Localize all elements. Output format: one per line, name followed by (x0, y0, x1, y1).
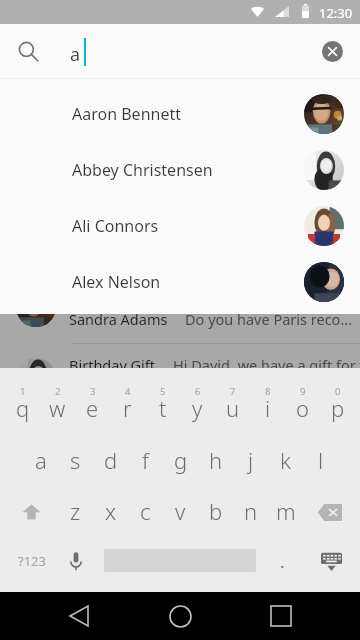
button[interactable]: 5 (145, 369, 180, 413)
staticText: Birthday Gift (69, 355, 156, 375)
button[interactable]: 4 (110, 369, 145, 413)
staticText: 8 (265, 385, 271, 398)
staticText: ?123 (18, 552, 46, 570)
button[interactable]: r (110, 382, 145, 434)
button[interactable]: h (198, 434, 233, 486)
staticText: Hi David, we have a gift for you... (173, 355, 360, 375)
button[interactable]: Abbey Christensen (0, 142, 360, 198)
staticText: e (86, 393, 99, 423)
staticText: 6 (195, 385, 201, 398)
staticText: h (209, 445, 223, 475)
button[interactable]: 8 (250, 369, 285, 413)
button[interactable]: z (58, 485, 93, 537)
button[interactable]: Alex Nelson (0, 254, 360, 310)
staticText: 0 (335, 385, 341, 398)
staticText: y (192, 393, 203, 423)
staticText: x (105, 496, 117, 526)
button[interactable]: Aaron Bennett (0, 86, 360, 142)
button[interactable]: 0 (320, 369, 355, 413)
button[interactable]: g (163, 434, 198, 486)
button[interactable]: e (75, 382, 110, 434)
staticText: q (16, 393, 30, 423)
staticText: Sandra Adams (69, 309, 168, 329)
button[interactable]: o (285, 382, 320, 434)
staticText: 4 (125, 385, 131, 398)
staticText: c (140, 496, 151, 526)
staticText: g (174, 445, 188, 475)
staticText: l (318, 445, 324, 475)
button[interactable]: t (145, 382, 180, 434)
button[interactable]: 9 (285, 369, 320, 413)
button[interactable]: a (23, 434, 58, 486)
staticText: a (70, 42, 81, 67)
button[interactable]: Clear search (310, 24, 354, 79)
button[interactable]: 6 (180, 369, 215, 413)
button[interactable]: v (163, 485, 198, 537)
button[interactable]: Back (55, 592, 103, 640)
staticText: Ali Connors (72, 215, 159, 237)
button[interactable]: j (233, 434, 268, 486)
staticText: m (276, 496, 296, 526)
staticText: f (142, 445, 149, 475)
button[interactable]: w (40, 382, 75, 434)
staticText: n (244, 496, 258, 526)
staticText: z (70, 496, 81, 526)
button[interactable]: Voice input (58, 537, 93, 585)
staticText: Alex Nelson (72, 271, 161, 293)
button[interactable]: Home (156, 592, 204, 640)
button[interactable]: y (180, 382, 215, 434)
button[interactable]: ?123 (5, 537, 58, 585)
button[interactable]: p (320, 382, 355, 434)
button[interactable]: l (303, 434, 338, 486)
button[interactable]: 2 (40, 369, 75, 413)
staticText: 9 (300, 385, 306, 398)
button[interactable]: . (265, 537, 300, 585)
button[interactable]: s (58, 434, 93, 486)
staticText: v (175, 496, 186, 526)
button[interactable]: Shift (5, 486, 58, 538)
staticText: a (35, 445, 47, 475)
staticText: s (70, 445, 81, 475)
button[interactable]: k (268, 434, 303, 486)
staticText: 5 (160, 385, 166, 398)
staticText: Aaron Bennett (72, 103, 181, 125)
button[interactable]: q (5, 382, 40, 434)
staticText: . (280, 550, 285, 573)
button[interactable]: Ali Connors (0, 198, 360, 254)
button[interactable]: Hide keyboard (309, 537, 353, 585)
button[interactable]: u (215, 382, 250, 434)
staticText: t (159, 393, 167, 423)
button[interactable]: 1 (5, 369, 40, 413)
staticText: u (226, 393, 240, 423)
staticText: w (49, 393, 66, 423)
button[interactable]: f (128, 434, 163, 486)
button[interactable]: Recents (257, 592, 305, 640)
button[interactable]: b (198, 485, 233, 537)
button[interactable]: Search (8, 24, 48, 79)
button[interactable]: m (268, 485, 303, 537)
staticText: i (265, 393, 271, 423)
staticText: 7 (230, 385, 236, 398)
staticText: j (248, 445, 254, 475)
button[interactable]: x (93, 485, 128, 537)
staticText: 3 (90, 385, 96, 398)
staticText: 2 (55, 385, 61, 398)
button[interactable]: d (93, 434, 128, 486)
staticText: r (123, 393, 132, 423)
staticText: Abbey Christensen (72, 159, 213, 181)
staticText: k (280, 445, 291, 475)
staticText: o (296, 393, 309, 423)
button[interactable]: c (128, 485, 163, 537)
button[interactable]: n (233, 485, 268, 537)
button[interactable]: 7 (215, 369, 250, 413)
staticText: 1 (20, 385, 26, 398)
button[interactable]: i (250, 382, 285, 434)
staticText: b (209, 496, 223, 526)
staticText: Do you have Paris reco... (185, 309, 353, 329)
button[interactable]: Backspace (303, 486, 356, 538)
staticText: 12:30 (319, 4, 353, 22)
button[interactable]: 3 (75, 369, 110, 413)
